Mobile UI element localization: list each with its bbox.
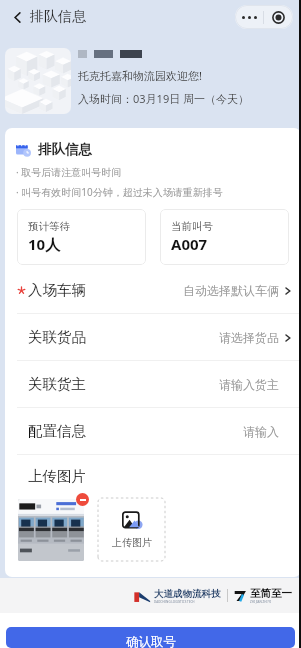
button[interactable]: Close mini program xyxy=(264,5,293,29)
button[interactable]: 入场车辆 xyxy=(5,267,301,313)
button[interactable]: Back xyxy=(8,8,26,26)
staticText: 排队信息 xyxy=(38,141,92,158)
staticText: 确认取号 xyxy=(126,634,176,648)
staticText: 排队信息 xyxy=(30,8,86,26)
staticText: 入场车辆 xyxy=(28,281,86,299)
staticText: 大道成物流科技 xyxy=(154,588,221,600)
button[interactable]: 配置信息 xyxy=(5,408,301,454)
staticText: 托克托嘉和物流园欢迎您! xyxy=(78,68,202,83)
staticText: DAOCHENG LOGISTICS TECH xyxy=(154,600,195,604)
button[interactable]: 关联货主 xyxy=(5,361,301,407)
staticText: 请输入 xyxy=(243,424,279,439)
staticText: · 叫号有效时间10分钟，超过未入场请重新排号 xyxy=(16,185,223,199)
staticText: 请输入货主 xyxy=(219,377,279,392)
staticText: 关联货主 xyxy=(28,375,86,393)
button[interactable]: Delete image xyxy=(76,493,89,506)
staticText: 上传图片 xyxy=(112,536,152,549)
staticText: 10人 xyxy=(28,234,61,254)
staticText: ZHI JIAN ZHI YI xyxy=(250,600,272,604)
staticText: A007 xyxy=(171,234,208,254)
staticText: 当前叫号 xyxy=(171,220,213,233)
staticText: 配置信息 xyxy=(28,422,86,440)
staticText: 入场时间：03月19日 周一（今天） xyxy=(78,91,250,106)
staticText: 预计等待 xyxy=(28,220,70,233)
button[interactable]: More options xyxy=(235,5,263,29)
staticText: · 取号后请注意叫号时间 xyxy=(16,165,122,179)
button[interactable]: 上传图片 xyxy=(98,498,165,561)
button[interactable]: 确认取号 xyxy=(6,627,295,648)
staticText: 自动选择默认车俩 xyxy=(183,283,279,298)
button[interactable]: 关联货品 xyxy=(5,314,301,360)
staticText: 上传图片 xyxy=(28,467,86,485)
staticText: 至简至一 xyxy=(250,587,292,600)
staticText: 请选择货品 xyxy=(219,330,279,345)
staticText: 关联货品 xyxy=(28,328,86,346)
